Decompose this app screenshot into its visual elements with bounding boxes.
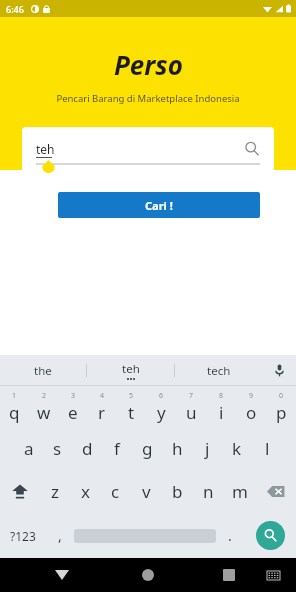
staticText: 6:46: [6, 3, 24, 15]
button[interactable]: k: [222, 428, 252, 469]
staticText: j: [205, 437, 210, 460]
staticText: w: [37, 401, 51, 424]
button[interactable]: s: [43, 428, 72, 469]
staticText: Cari !: [145, 198, 173, 213]
staticText: m: [232, 480, 248, 503]
button[interactable]: Cari !: [58, 192, 260, 218]
staticText: 9: [249, 391, 254, 401]
staticText: Perso: [114, 47, 183, 82]
staticText: 8: [219, 391, 224, 401]
staticText: p: [276, 401, 287, 424]
button[interactable]: Hide keyboard: [47, 560, 77, 590]
staticText: q: [9, 401, 20, 424]
staticText: n: [203, 480, 214, 503]
button[interactable]: Voice input: [262, 355, 296, 386]
button[interactable]: Backspace: [255, 469, 296, 513]
button[interactable]: 9: [236, 387, 266, 428]
button[interactable]: teh: [87, 355, 174, 386]
staticText: t: [128, 401, 135, 424]
staticText: r: [98, 401, 106, 424]
staticText: teh: [36, 141, 55, 157]
button[interactable]: 4: [87, 387, 116, 428]
staticText: teh: [122, 361, 140, 377]
staticText: s: [53, 437, 62, 460]
button[interactable]: tech: [175, 355, 262, 386]
button[interactable]: x: [70, 469, 100, 513]
button[interactable]: n: [193, 469, 224, 513]
staticText: 3: [71, 391, 76, 401]
staticText: u: [186, 401, 197, 424]
button[interactable]: 6: [146, 387, 176, 428]
staticText: h: [172, 437, 183, 460]
staticText: 4: [100, 391, 105, 401]
button[interactable]: Shift: [0, 469, 40, 513]
staticText: y: [157, 401, 166, 424]
staticText: z: [51, 480, 59, 503]
staticText: 5: [129, 391, 134, 401]
button[interactable]: ,: [46, 513, 74, 558]
staticText: l: [265, 437, 270, 460]
staticText: c: [111, 480, 120, 503]
button[interactable]: 1: [0, 387, 29, 428]
staticText: f: [114, 437, 120, 460]
button[interactable]: a: [14, 428, 43, 469]
staticText: Pencari Barang di Marketplace Indonesia: [0, 92, 296, 105]
button[interactable]: .: [216, 513, 244, 558]
button[interactable]: c: [100, 469, 131, 513]
button[interactable]: 7: [176, 387, 206, 428]
button[interactable]: Home: [133, 560, 163, 590]
button[interactable]: Recents: [214, 560, 244, 590]
staticText: tech: [207, 363, 231, 379]
staticText: g: [142, 437, 153, 460]
button[interactable]: 5: [116, 387, 146, 428]
button[interactable]: 3: [58, 387, 87, 428]
staticText: 2: [42, 391, 47, 401]
staticText: ,: [58, 526, 62, 545]
button[interactable]: Switch keyboard: [260, 562, 286, 588]
staticText: the: [34, 363, 52, 379]
staticText: v: [142, 480, 151, 503]
staticText: 0: [279, 391, 284, 401]
staticText: 6: [159, 391, 164, 401]
staticText: a: [24, 437, 34, 460]
button[interactable]: f: [102, 428, 132, 469]
other: Search: [244, 141, 260, 157]
staticText: k: [232, 437, 242, 460]
button[interactable]: j: [192, 428, 222, 469]
button[interactable]: m: [224, 469, 255, 513]
button[interactable]: teh: [36, 141, 260, 157]
button[interactable]: [74, 513, 216, 558]
staticText: ?123: [10, 528, 36, 544]
staticText: x: [81, 480, 90, 503]
staticText: i: [219, 401, 224, 424]
button[interactable]: 0: [266, 387, 296, 428]
staticText: b: [172, 480, 183, 503]
button[interactable]: l: [252, 428, 282, 469]
button[interactable]: g: [132, 428, 162, 469]
staticText: 7: [189, 391, 194, 401]
button[interactable]: z: [40, 469, 70, 513]
button[interactable]: ?123: [0, 513, 46, 558]
staticText: 1: [12, 391, 17, 401]
button[interactable]: b: [162, 469, 193, 513]
button[interactable]: 2: [29, 387, 58, 428]
button[interactable]: the: [0, 355, 86, 386]
staticText: o: [246, 401, 257, 424]
button[interactable]: Search: [256, 521, 285, 550]
staticText: .: [228, 526, 232, 545]
button[interactable]: h: [162, 428, 192, 469]
staticText: e: [68, 401, 78, 424]
button[interactable]: v: [131, 469, 162, 513]
staticText: d: [82, 437, 93, 460]
button[interactable]: 8: [206, 387, 236, 428]
button[interactable]: d: [72, 428, 102, 469]
